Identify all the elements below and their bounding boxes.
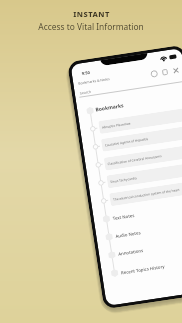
staticText: Access to Vital Information: [38, 21, 144, 32]
staticText: Recent Topics History: [120, 263, 165, 275]
staticText: Causative Agents of Hepatitis: [105, 137, 149, 147]
staticText: Text Notes: [112, 212, 135, 221]
staticText: Sinus Tachycardia: [110, 176, 137, 184]
staticText: Bookmarks & Notes: [78, 76, 110, 86]
button[interactable]: The electrical conduction system of the …: [109, 179, 182, 206]
button[interactable]: Audio Notes: [114, 214, 182, 244]
staticText: Abruptio Placentae: [102, 121, 131, 130]
staticText: INSTANT: [73, 9, 110, 19]
staticText: Annotations: [118, 247, 144, 257]
staticText: Classification of Cerebral Aneurysms: [107, 154, 162, 166]
button[interactable]: Close: [172, 67, 180, 75]
button[interactable]: Causative Agents of Hepatitis: [101, 125, 182, 152]
button[interactable]: Sinus Tachycardia: [106, 162, 182, 188]
button[interactable]: Recent Topics History: [120, 251, 182, 280]
button[interactable]: Annotations: [117, 232, 182, 262]
staticText: Audio Notes: [115, 229, 142, 239]
button[interactable]: Documents: [161, 68, 169, 76]
button[interactable]: Classification of Cerebral Aneurysms: [104, 144, 182, 171]
button[interactable]: Abruptio Placentae: [98, 107, 182, 134]
staticText: The electrical conduction system of the …: [113, 188, 181, 202]
button[interactable]: Text Notes: [112, 196, 182, 226]
staticText: 9:50: [81, 70, 90, 76]
staticText: Bookmarks: [95, 102, 125, 113]
staticText: Search: [79, 89, 92, 96]
button[interactable]: Help: [150, 70, 158, 78]
